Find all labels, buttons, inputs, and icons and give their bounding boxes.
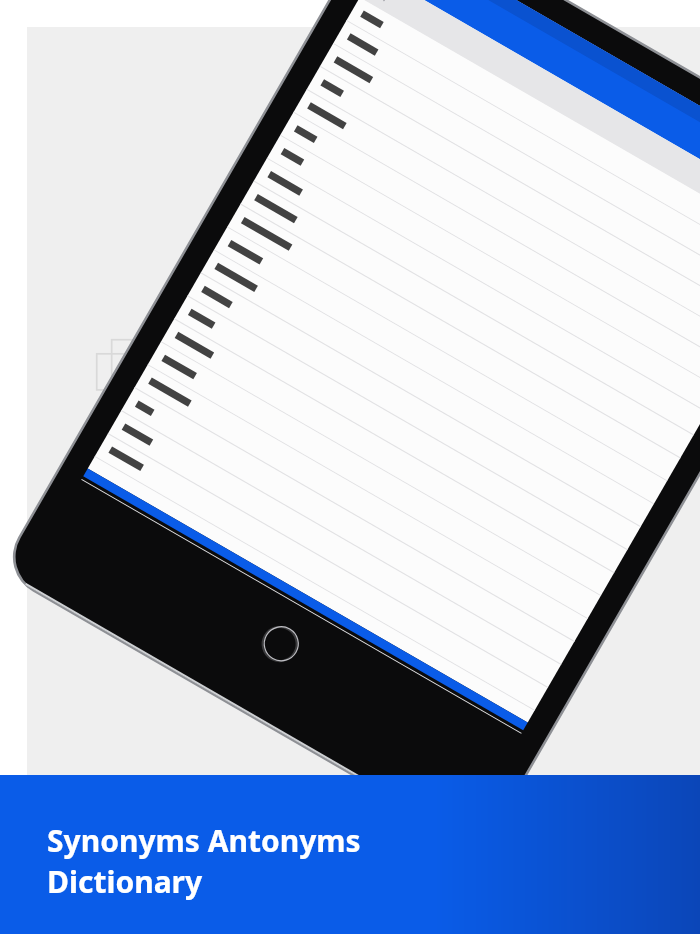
staticText: Synonyms Antonyms xyxy=(47,820,361,861)
other: App screenshot preview xyxy=(265,30,700,934)
staticText: Dictionary xyxy=(47,861,203,902)
button[interactable]: Synonyms Antonyms xyxy=(47,820,361,902)
